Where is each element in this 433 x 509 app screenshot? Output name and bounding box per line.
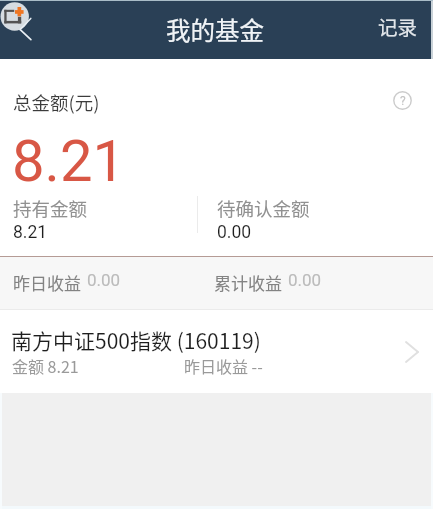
staticText: 8.21 bbox=[12, 127, 126, 195]
staticText: ? bbox=[400, 94, 406, 108]
staticText: 金额 8.21 bbox=[12, 354, 79, 377]
staticText: 0.00 bbox=[87, 270, 121, 290]
button[interactable]: Help bbox=[393, 91, 412, 110]
staticText: 累计收益 bbox=[214, 270, 282, 295]
staticText: 0.00 bbox=[288, 270, 322, 290]
staticText: 总金额(元) bbox=[13, 89, 100, 116]
staticText: 我的基金 bbox=[166, 12, 264, 47]
staticText: 8.21 bbox=[13, 222, 48, 243]
staticText: 昨日收益 -- bbox=[184, 354, 263, 377]
staticText: 0.00 bbox=[217, 222, 252, 243]
staticText: 南方中证500指数 (160119) bbox=[11, 325, 261, 355]
staticText: 待确认金额 bbox=[217, 195, 310, 222]
staticText: 记录 bbox=[378, 12, 418, 40]
staticText: 持有金额 bbox=[13, 195, 88, 222]
staticText: 昨日收益 bbox=[13, 270, 81, 295]
button[interactable]: 南方中证500指数 (160119) bbox=[0, 310, 433, 393]
button[interactable]: 记录 bbox=[362, 0, 433, 59]
